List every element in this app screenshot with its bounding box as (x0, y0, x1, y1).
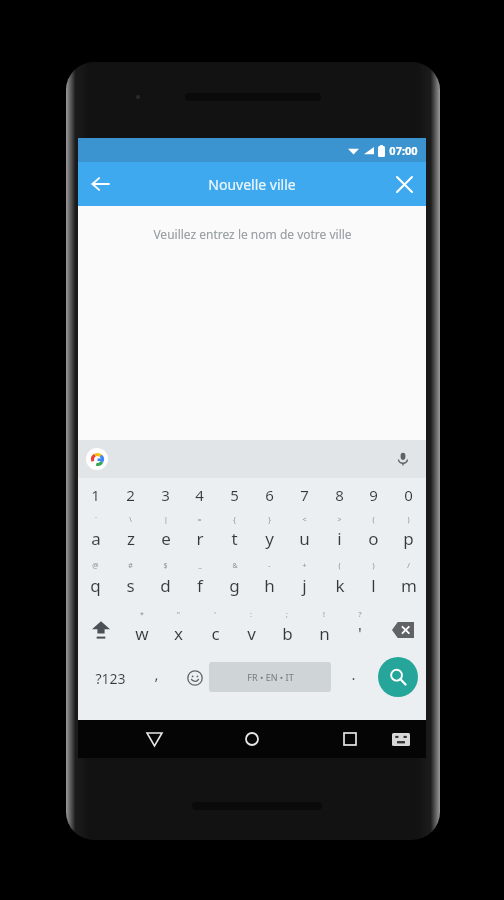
staticText: 3 (161, 485, 170, 505)
button[interactable]: ) (356, 558, 391, 606)
button[interactable]: 5 (217, 478, 252, 512)
staticText: i (337, 527, 342, 550)
staticText: t (231, 527, 238, 550)
button[interactable]: Emoji (176, 654, 214, 702)
staticText: + (302, 561, 307, 571)
button[interactable]: | (148, 512, 183, 558)
staticText: @ (92, 561, 99, 571)
staticText: , (154, 664, 159, 684)
staticText: v (247, 622, 256, 645)
button[interactable]: 6 (252, 478, 287, 512)
staticText: y (265, 527, 274, 550)
button[interactable]: FR • EN • IT (209, 662, 331, 692)
staticText: c (211, 622, 220, 645)
staticText: w (135, 622, 149, 645)
staticText: e (161, 527, 171, 550)
button[interactable]: 3 (148, 478, 183, 512)
button[interactable]: ; (269, 606, 305, 654)
button[interactable]: ' (197, 606, 233, 654)
button[interactable]: $ (148, 558, 183, 606)
staticText: u (299, 527, 310, 550)
button[interactable]: Close (382, 162, 426, 206)
button[interactable]: Back (134, 720, 174, 758)
button[interactable]: ?123 (84, 654, 136, 702)
button[interactable]: 9 (356, 478, 391, 512)
button[interactable]: Google (86, 448, 108, 470)
button[interactable]: / (391, 558, 426, 606)
staticText: ( (338, 561, 341, 571)
staticText: . (351, 664, 356, 684)
button[interactable]: : (233, 606, 269, 654)
button[interactable]: Voice input (390, 446, 416, 472)
staticText: \ (129, 515, 132, 525)
staticText: h (264, 574, 275, 597)
button[interactable]: 1 (78, 478, 113, 512)
staticText: p (403, 527, 414, 550)
staticText: 4 (195, 485, 204, 505)
button[interactable]: ( (356, 512, 391, 558)
button[interactable]: } (252, 512, 287, 558)
staticText: ' (214, 610, 216, 620)
staticText: > (337, 515, 342, 525)
staticText: * (140, 610, 144, 620)
button[interactable]: ( (322, 558, 357, 606)
button[interactable]: { (217, 512, 252, 558)
button[interactable]: * (124, 606, 160, 654)
button[interactable]: < (287, 512, 322, 558)
button[interactable]: # (113, 558, 148, 606)
staticText: - (268, 561, 271, 571)
button[interactable]: " (160, 606, 196, 654)
staticText: # (128, 561, 133, 571)
staticText: FR • EN • IT (247, 671, 294, 683)
button[interactable]: > (322, 512, 357, 558)
button[interactable]: 7 (287, 478, 322, 512)
staticText: _ (198, 561, 202, 571)
button[interactable]: ` (78, 512, 113, 558)
staticText: Veuillez entrez le nom de votre ville (153, 226, 352, 242)
button[interactable]: ? (342, 606, 378, 654)
staticText: ; (286, 610, 288, 620)
button[interactable]: = (182, 512, 217, 558)
staticText: n (319, 622, 330, 645)
button[interactable]: 4 (182, 478, 217, 512)
staticText: 07:00 (389, 143, 418, 158)
button[interactable]: ! (306, 606, 342, 654)
button[interactable]: ) (391, 512, 426, 558)
button[interactable]: Period (334, 654, 372, 702)
staticText: x (174, 622, 183, 645)
staticText: | (164, 515, 168, 525)
button[interactable]: - (252, 558, 287, 606)
button[interactable]: & (217, 558, 252, 606)
staticText: 5 (230, 485, 239, 505)
button[interactable]: Back (78, 162, 122, 206)
button[interactable]: Shift (78, 606, 124, 654)
staticText: 2 (126, 485, 135, 505)
staticText: s (126, 574, 135, 597)
button[interactable]: Comma (136, 654, 176, 702)
staticText: q (90, 574, 101, 597)
button[interactable]: @ (78, 558, 113, 606)
staticText: d (160, 574, 171, 597)
staticText: r (196, 527, 204, 550)
staticText: { (233, 515, 236, 525)
staticText: ' (358, 622, 362, 645)
button[interactable]: \ (113, 512, 148, 558)
button[interactable]: Hide keyboard (383, 720, 419, 758)
staticText: ! (323, 610, 325, 620)
button[interactable]: _ (182, 558, 217, 606)
button[interactable]: 8 (322, 478, 357, 512)
button[interactable]: Search (378, 657, 418, 697)
button[interactable]: Recents (330, 720, 370, 758)
button[interactable]: Home (232, 720, 272, 758)
staticText: 8 (335, 485, 344, 505)
button[interactable]: 0 (391, 478, 426, 512)
staticText: z (127, 527, 135, 550)
staticText: " (177, 610, 180, 620)
staticText: ? (358, 610, 362, 620)
button[interactable]: + (287, 558, 322, 606)
button[interactable]: Backspace (380, 606, 426, 654)
staticText: j (302, 574, 307, 597)
staticText: Nouvelle ville (208, 175, 296, 194)
button[interactable]: 2 (113, 478, 148, 512)
staticText: ) (407, 515, 410, 525)
